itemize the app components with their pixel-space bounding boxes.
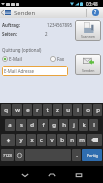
staticText: f bbox=[42, 121, 45, 129]
other: Shift bbox=[6, 138, 11, 143]
staticText: k bbox=[82, 121, 86, 129]
button[interactable]: r bbox=[33, 104, 42, 116]
staticText: b bbox=[60, 136, 64, 144]
staticText: Scannen bbox=[81, 34, 96, 39]
button[interactable]: k bbox=[79, 119, 88, 131]
button[interactable]: Emoji bbox=[15, 149, 24, 161]
staticText: Senden bbox=[82, 68, 95, 73]
staticText: r bbox=[36, 106, 39, 114]
button[interactable]: d bbox=[27, 119, 37, 131]
staticText: i bbox=[77, 106, 79, 114]
staticText: Quittung (optional) bbox=[2, 47, 42, 53]
button[interactable]: Fax bbox=[50, 56, 65, 62]
button[interactable]: Fertig bbox=[82, 149, 102, 161]
button[interactable]: z bbox=[53, 104, 62, 116]
button[interactable]: Shift bbox=[1, 134, 15, 146]
staticText: Senden bbox=[14, 9, 36, 17]
staticText: h bbox=[62, 121, 66, 129]
button[interactable]: ?123 bbox=[1, 149, 14, 161]
staticText: q bbox=[4, 106, 8, 114]
button[interactable]: . bbox=[72, 149, 81, 161]
staticText: Fertig bbox=[87, 153, 98, 158]
button[interactable]: t bbox=[43, 104, 52, 116]
button[interactable]: c bbox=[37, 134, 46, 146]
button[interactable]: m bbox=[77, 134, 86, 146]
button[interactable]: E-Mail Adresse bbox=[2, 66, 68, 76]
button[interactable]: u bbox=[63, 104, 72, 116]
staticText: m bbox=[79, 136, 85, 144]
staticText: . bbox=[76, 151, 78, 159]
staticText: w bbox=[15, 106, 20, 114]
button[interactable]: j bbox=[69, 119, 78, 131]
staticText: g bbox=[52, 121, 56, 129]
staticText: x bbox=[30, 136, 34, 144]
staticText: 03:48 bbox=[86, 1, 98, 7]
button[interactable]: Home bbox=[44, 166, 60, 183]
button[interactable]: q bbox=[1, 104, 11, 116]
button[interactable]: Delete bbox=[87, 134, 102, 146]
button[interactable]: E-Mail bbox=[2, 56, 22, 62]
other: Delete bbox=[91, 138, 98, 142]
staticText: s bbox=[20, 121, 23, 129]
button[interactable]: Senden bbox=[75, 54, 101, 75]
button[interactable]: Help bbox=[87, 7, 103, 18]
staticText: Auftrag: bbox=[2, 22, 21, 28]
staticText: j bbox=[73, 121, 75, 129]
button[interactable]: n bbox=[67, 134, 76, 146]
staticText: E-Mail bbox=[9, 56, 22, 62]
button[interactable]: p bbox=[93, 104, 102, 116]
button[interactable]: v bbox=[47, 134, 56, 146]
button[interactable]: x bbox=[27, 134, 36, 146]
button[interactable]: Back bbox=[17, 166, 33, 183]
other: Back bbox=[1, 10, 4, 15]
button[interactable]: Recents bbox=[71, 166, 87, 183]
staticText: p bbox=[96, 106, 100, 114]
staticText: 1234567895 bbox=[47, 22, 73, 28]
staticText: o bbox=[86, 106, 90, 114]
button[interactable]: w bbox=[12, 104, 22, 116]
button[interactable]: b bbox=[57, 134, 66, 146]
staticText: t bbox=[46, 106, 49, 114]
staticText: Seiten: bbox=[2, 31, 17, 37]
staticText: v bbox=[50, 136, 54, 144]
staticText: 2 bbox=[45, 31, 48, 37]
button[interactable]: Scannen bbox=[75, 20, 101, 41]
staticText: a bbox=[8, 121, 12, 129]
staticText: E-Mail Adresse bbox=[4, 68, 35, 74]
staticText: ? bbox=[94, 9, 97, 16]
staticText: l bbox=[93, 121, 95, 129]
button[interactable]: l bbox=[89, 119, 98, 131]
button[interactable]: y bbox=[16, 134, 26, 146]
button[interactable]: i bbox=[73, 104, 82, 116]
button[interactable]: a bbox=[5, 119, 15, 131]
staticText: z bbox=[56, 106, 59, 114]
other: Emoji bbox=[17, 153, 22, 158]
button[interactable]: f bbox=[38, 119, 48, 131]
staticText: y bbox=[19, 136, 23, 144]
staticText: c bbox=[40, 136, 43, 144]
staticText: ?123 bbox=[3, 153, 12, 158]
button[interactable]: e bbox=[23, 104, 32, 116]
staticText: u bbox=[66, 106, 70, 114]
staticText: Fax bbox=[57, 56, 65, 62]
button[interactable]: o bbox=[83, 104, 92, 116]
button[interactable]: Back bbox=[0, 7, 36, 18]
button[interactable]: s bbox=[16, 119, 26, 131]
button[interactable]: g bbox=[49, 119, 58, 131]
staticText: d bbox=[30, 121, 34, 129]
button[interactable]: h bbox=[59, 119, 68, 131]
staticText: n bbox=[70, 136, 74, 144]
staticText: e bbox=[26, 106, 30, 114]
